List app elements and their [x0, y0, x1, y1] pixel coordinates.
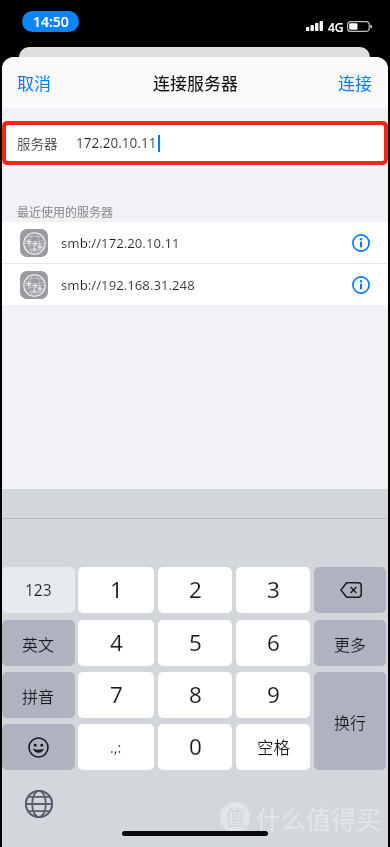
button[interactable]: 空格: [236, 724, 310, 770]
staticText: 拼音: [22, 684, 55, 707]
button[interactable]: 7: [78, 672, 154, 718]
button[interactable]: 英文: [2, 620, 75, 666]
staticText: 0: [189, 731, 202, 762]
button[interactable]: Info: [341, 223, 381, 263]
button[interactable]: 服务器: [6, 125, 384, 161]
staticText: 14:50: [33, 12, 69, 31]
staticText: smb://172.20.10.11: [61, 234, 180, 252]
button[interactable]: 3: [236, 567, 310, 613]
staticText: 9: [267, 679, 280, 710]
staticText: 空格: [257, 735, 290, 759]
button[interactable]: 9: [236, 672, 310, 718]
button[interactable]: 1: [78, 567, 154, 613]
button[interactable]: Emoji: [2, 724, 75, 770]
button[interactable]: Info: [341, 265, 381, 305]
staticText: 7: [110, 679, 123, 710]
button[interactable]: 4: [78, 620, 154, 666]
button[interactable]: .,:: [78, 724, 154, 770]
staticText: 更多: [334, 632, 367, 655]
staticText: 最近使用的服务器: [17, 203, 114, 220]
button[interactable]: 2: [158, 567, 232, 613]
button[interactable]: 123: [2, 567, 75, 613]
staticText: 6: [267, 627, 280, 658]
staticText: 连接服务器: [153, 70, 238, 95]
button[interactable]: 拼音: [2, 672, 75, 718]
staticText: 5: [189, 627, 202, 658]
button[interactable]: 0: [158, 724, 232, 770]
button[interactable]: 5: [158, 620, 232, 666]
button[interactable]: smb://172.20.10.11: [2, 222, 388, 263]
button[interactable]: smb://192.168.31.248: [2, 264, 388, 305]
button[interactable]: Switch keyboard: [22, 787, 56, 821]
staticText: 2: [189, 574, 202, 605]
staticText: 连接: [338, 70, 372, 95]
staticText: 值: [225, 803, 245, 832]
staticText: 取消: [17, 70, 51, 95]
staticText: 123: [25, 579, 52, 600]
button[interactable]: 6: [236, 620, 310, 666]
staticText: 服务器: [17, 133, 58, 153]
staticText: 换行: [334, 710, 367, 733]
button[interactable]: 更多: [314, 620, 386, 666]
staticText: 3: [267, 574, 280, 605]
button[interactable]: Delete: [314, 567, 386, 613]
staticText: 什么值得买: [256, 800, 382, 836]
button[interactable]: 取消: [2, 63, 63, 102]
button[interactable]: 换行: [314, 672, 386, 770]
button[interactable]: 连接: [326, 63, 388, 102]
staticText: 英文: [22, 632, 55, 655]
staticText: 4G: [328, 19, 344, 35]
button[interactable]: 8: [158, 672, 232, 718]
staticText: 1: [110, 574, 123, 605]
staticText: 172.20.10.11: [76, 134, 157, 152]
staticText: .,:: [110, 738, 122, 757]
staticText: 4: [110, 627, 123, 658]
staticText: 8: [189, 679, 202, 710]
staticText: smb://192.168.31.248: [61, 276, 195, 294]
